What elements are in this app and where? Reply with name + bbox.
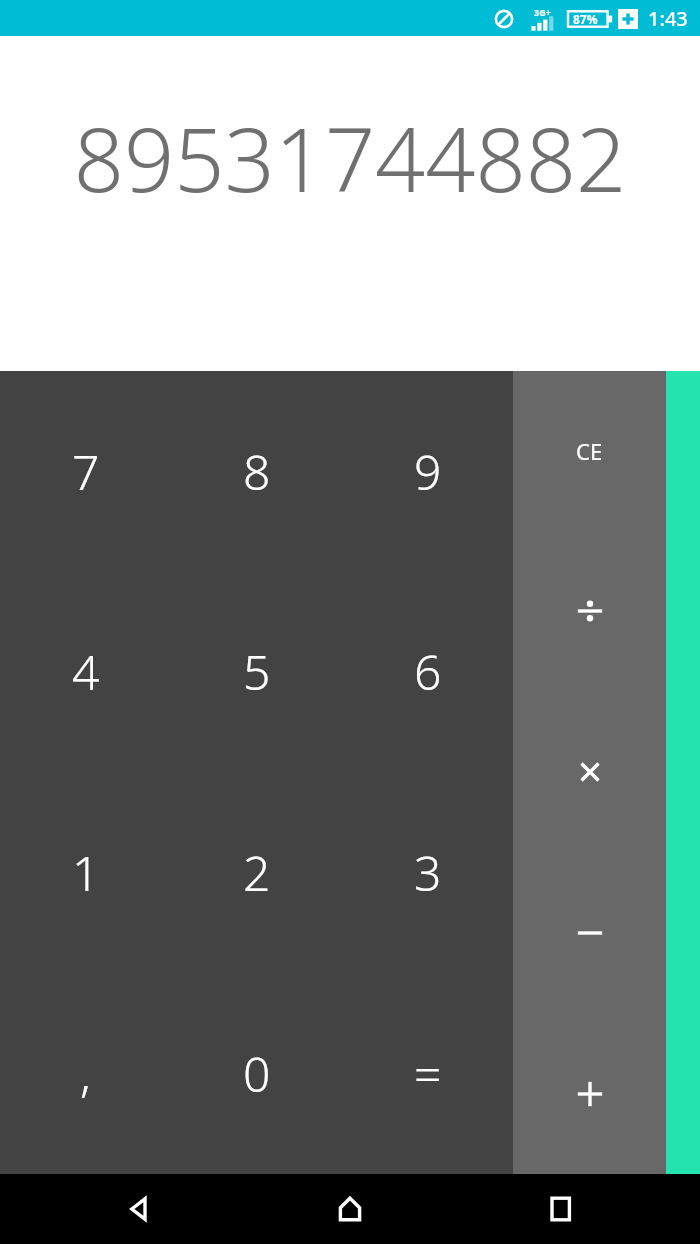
staticText: 6 (414, 639, 442, 704)
button[interactable]: 2 (171, 772, 342, 973)
staticText: 7 (72, 439, 100, 504)
staticText: = (414, 1041, 442, 1106)
staticText: 1:43 (648, 5, 688, 32)
staticText: 89531744882 (0, 98, 700, 218)
button[interactable]: 9 (342, 371, 513, 571)
staticText: CE (576, 436, 603, 466)
button[interactable]: 7 (0, 371, 171, 571)
staticText: 4 (72, 639, 100, 704)
button[interactable]: 1 (0, 772, 171, 973)
button[interactable]: Divide (513, 531, 666, 691)
button[interactable]: Minus (513, 852, 666, 1013)
staticText: 1 (72, 840, 100, 905)
button[interactable]: Multiply (513, 691, 666, 852)
button[interactable]: 0 (171, 973, 342, 1174)
staticText: 2 (243, 840, 271, 905)
staticText: 87% (573, 11, 598, 27)
button[interactable]: 3 (342, 772, 513, 973)
button[interactable]: 6 (342, 571, 513, 772)
staticText: 3G+ (534, 6, 551, 18)
button[interactable]: 4 (0, 571, 171, 772)
button[interactable]: CE (513, 371, 666, 531)
staticText: 0 (243, 1041, 271, 1106)
button[interactable]: Back (110, 1180, 168, 1238)
staticText: , (80, 1041, 91, 1106)
staticText: 3 (414, 840, 442, 905)
button[interactable]: = (342, 973, 513, 1174)
button[interactable]: Plus (513, 1013, 666, 1174)
button[interactable]: 5 (171, 571, 342, 772)
button[interactable]: Recents (532, 1180, 590, 1238)
button[interactable]: 8 (171, 371, 342, 571)
staticText: 8 (243, 439, 271, 504)
button[interactable]: Home (321, 1180, 379, 1238)
staticText: 9 (414, 439, 442, 504)
staticText: 5 (243, 639, 271, 704)
button[interactable]: , (0, 973, 171, 1174)
